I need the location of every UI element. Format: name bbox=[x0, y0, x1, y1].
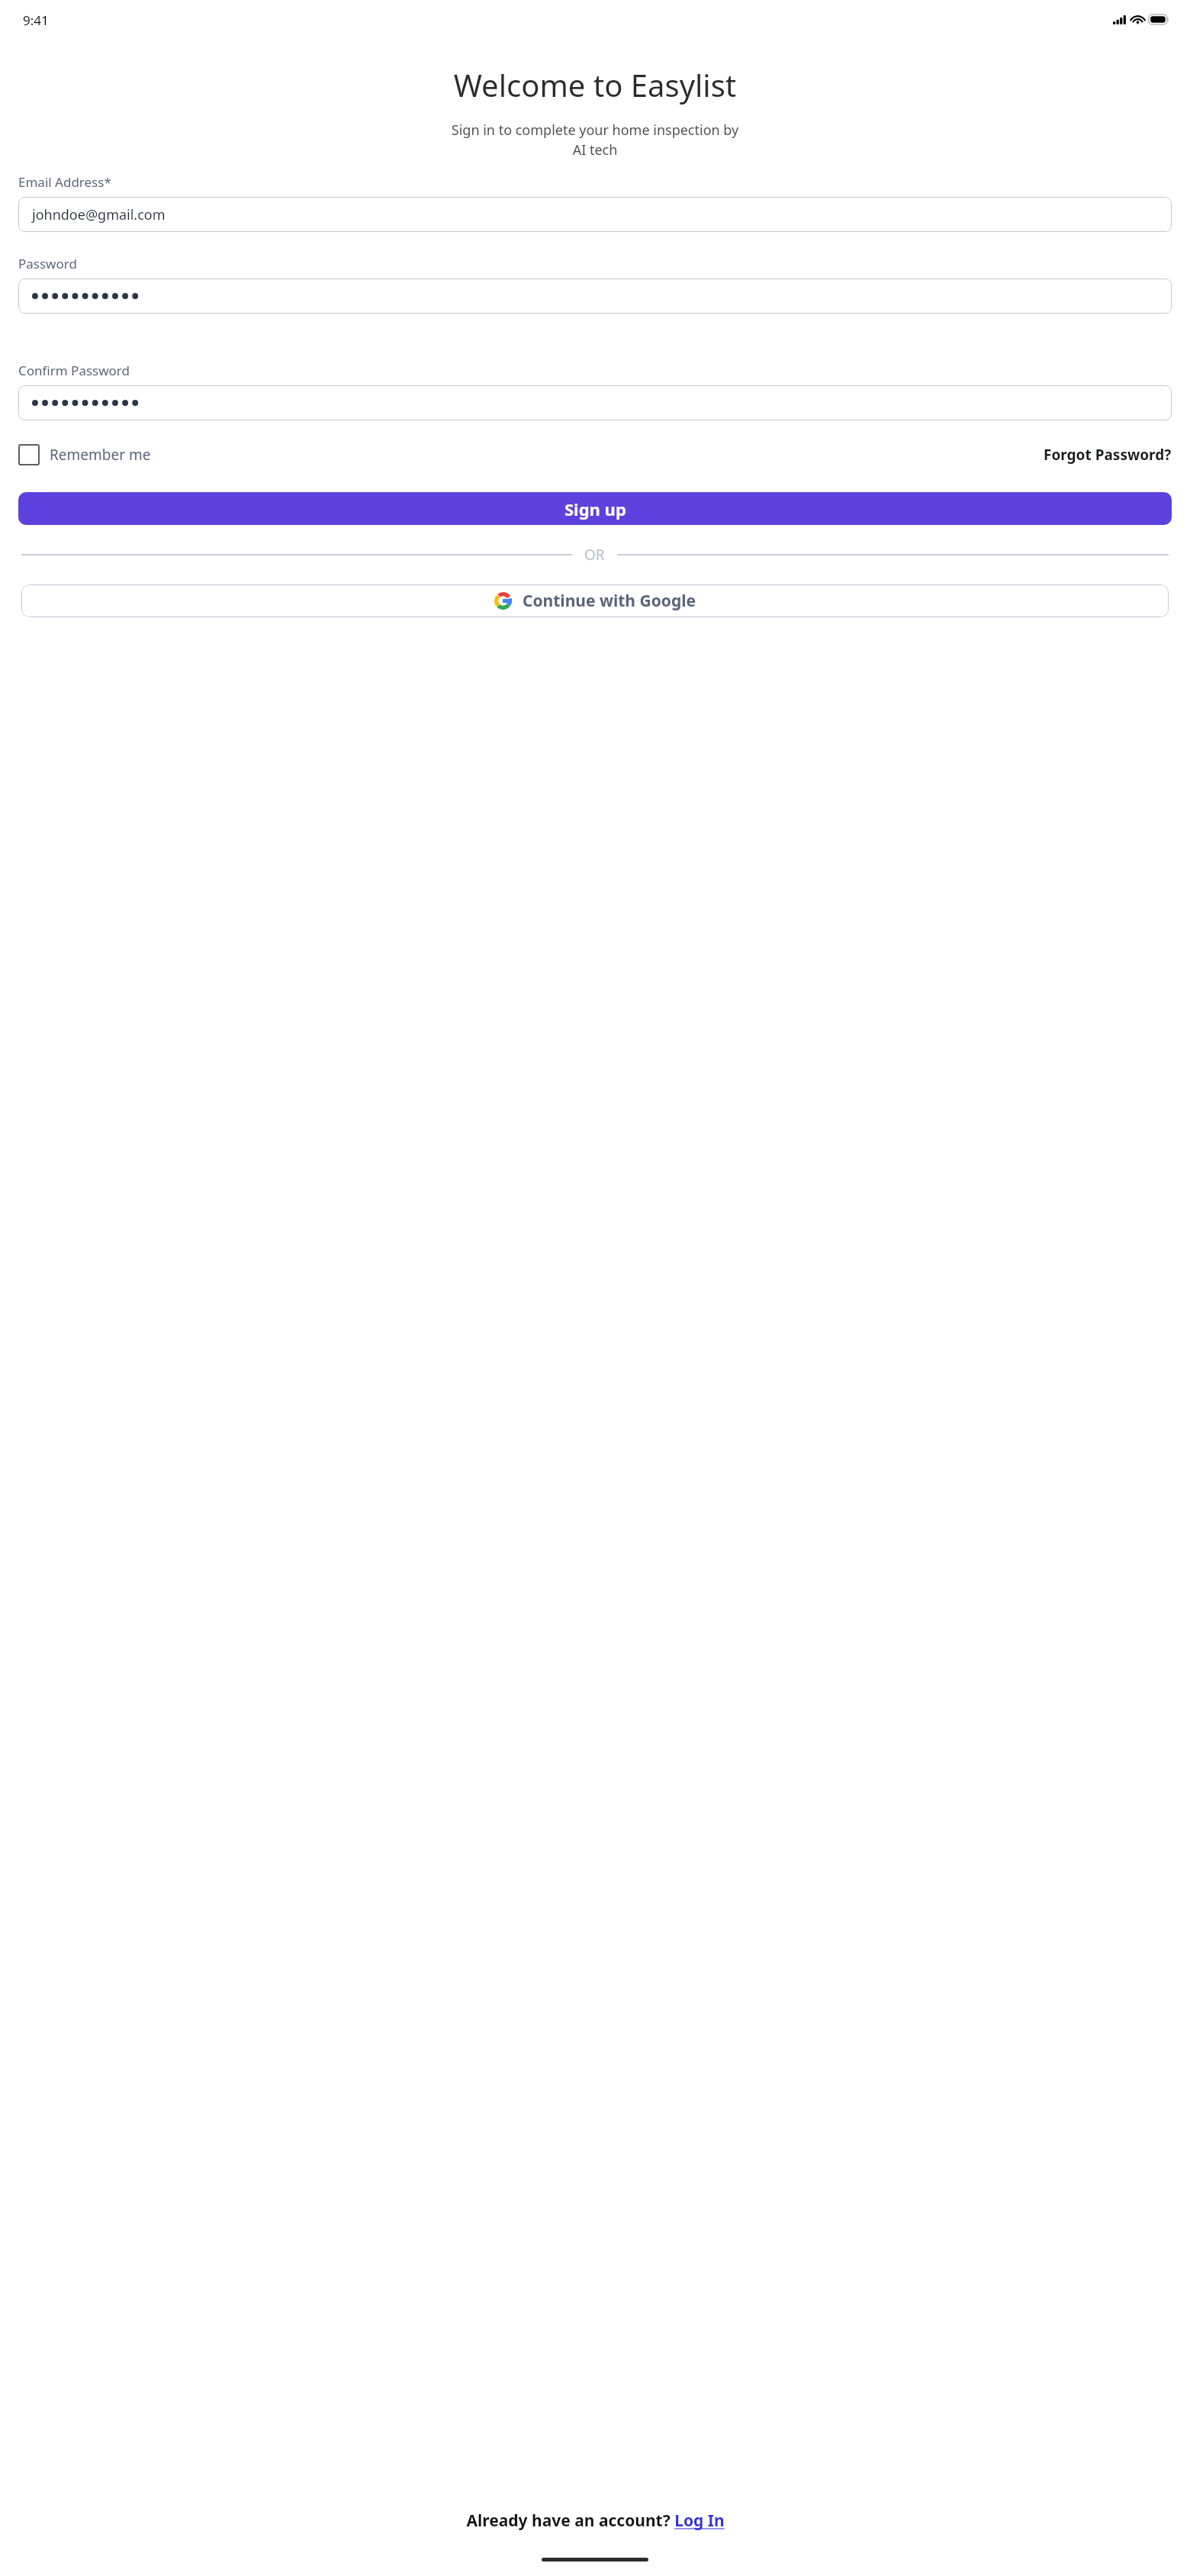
staticText: Remember me bbox=[50, 445, 151, 465]
staticText: Sign in to complete your home inspection… bbox=[15, 121, 1175, 159]
button[interactable]: Already have an account? Log In bbox=[0, 2510, 1190, 2532]
staticText: johndoe@gmail.com bbox=[32, 205, 166, 224]
button[interactable]: Remember me bbox=[18, 441, 151, 469]
staticText: OR bbox=[584, 545, 605, 565]
button[interactable] bbox=[18, 279, 1172, 314]
staticText: Forgot Password? bbox=[1044, 445, 1172, 465]
button[interactable]: Sign up bbox=[18, 492, 1172, 525]
button[interactable]: johndoe@gmail.com bbox=[18, 197, 1172, 232]
staticText: Already have an account? Log In bbox=[466, 2510, 725, 2532]
staticText: 9:41 bbox=[23, 11, 49, 29]
staticText: Confirm Password bbox=[18, 362, 130, 379]
staticText: Continue with Google bbox=[523, 590, 696, 612]
staticText: Email Address* bbox=[18, 173, 111, 191]
button[interactable]: Forgot Password? bbox=[1044, 442, 1172, 468]
button[interactable] bbox=[18, 385, 1172, 420]
staticText: Sign up bbox=[564, 497, 626, 520]
staticText: Password bbox=[18, 255, 77, 272]
button[interactable]: Continue with Google bbox=[21, 584, 1169, 617]
staticText: Welcome to Easylist bbox=[0, 64, 1190, 105]
